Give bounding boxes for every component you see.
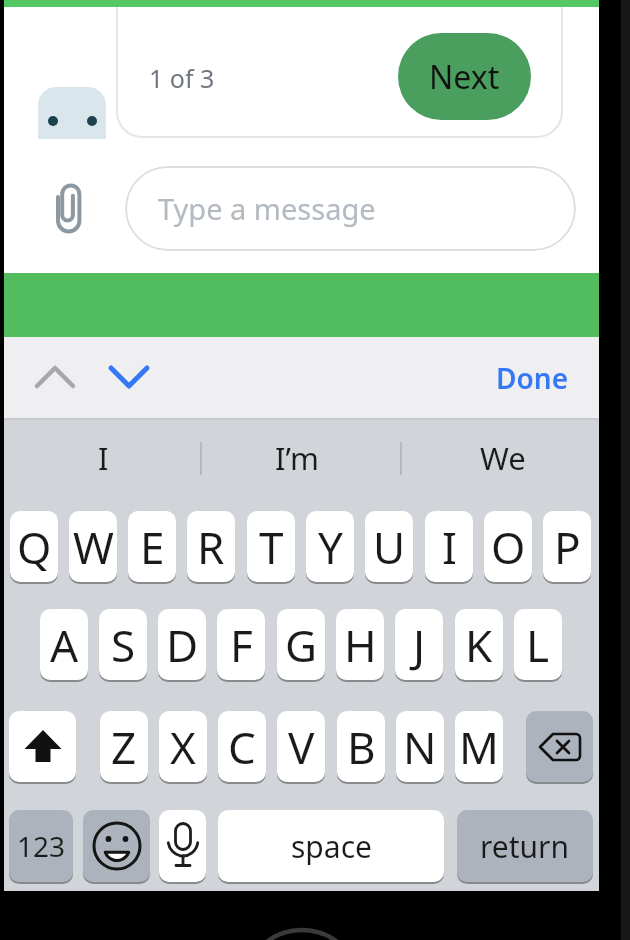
staticText: D <box>166 615 199 675</box>
staticText: M <box>459 717 499 777</box>
button[interactable]: O <box>484 511 532 582</box>
button[interactable]: W <box>69 511 117 582</box>
staticText: L <box>526 615 550 675</box>
button[interactable] <box>159 810 206 882</box>
staticText: K <box>465 615 493 675</box>
staticText: J <box>413 615 426 675</box>
button[interactable] <box>83 810 150 882</box>
button[interactable]: R <box>187 511 235 582</box>
staticText: A <box>50 615 79 675</box>
button[interactable]: K <box>455 609 503 680</box>
button[interactable]: return <box>457 810 593 882</box>
staticText: Z <box>111 717 137 777</box>
button[interactable]: M <box>455 711 503 782</box>
staticText: B <box>347 717 376 777</box>
button[interactable] <box>107 358 151 398</box>
staticText: W <box>73 517 114 577</box>
staticText: I <box>442 517 457 577</box>
button[interactable]: B <box>337 711 385 782</box>
staticText: S <box>111 615 136 675</box>
staticText: Type a message <box>158 189 376 228</box>
staticText: V <box>288 717 315 777</box>
staticText: 1 of 3 <box>149 61 215 95</box>
button[interactable]: N <box>396 711 444 782</box>
staticText: F <box>230 615 253 675</box>
button[interactable] <box>9 711 76 782</box>
button[interactable] <box>526 711 593 782</box>
staticText: H <box>344 615 377 675</box>
staticText: U <box>373 517 406 577</box>
button[interactable]: Z <box>100 711 148 782</box>
button[interactable]: Type a message <box>125 166 576 251</box>
button[interactable]: I <box>40 428 166 488</box>
staticText: G <box>285 615 318 675</box>
button[interactable]: I’m <box>234 428 360 488</box>
button[interactable]: D <box>158 609 206 680</box>
button[interactable]: I <box>425 511 473 582</box>
staticText: Q <box>17 517 52 577</box>
button[interactable]: V <box>277 711 325 782</box>
staticText: I <box>98 437 109 479</box>
staticText: R <box>197 517 225 577</box>
staticText: return <box>480 826 570 867</box>
button[interactable]: C <box>218 711 266 782</box>
button[interactable]: U <box>365 511 413 582</box>
button[interactable]: T <box>247 511 295 582</box>
button[interactable]: S <box>99 609 147 680</box>
staticText: 123 <box>17 827 66 865</box>
button[interactable]: space <box>218 810 444 882</box>
staticText: Y <box>318 517 343 577</box>
button[interactable]: X <box>159 711 207 782</box>
button[interactable]: Q <box>10 511 58 582</box>
staticText: N <box>403 717 437 777</box>
button[interactable]: A <box>40 609 88 680</box>
button[interactable]: Y <box>306 511 354 582</box>
button[interactable]: 123 <box>9 810 73 882</box>
staticText: T <box>259 517 284 577</box>
staticText: Done <box>496 359 569 397</box>
button[interactable]: Done <box>486 356 578 400</box>
button[interactable]: P <box>543 511 591 582</box>
button[interactable]: E <box>128 511 176 582</box>
staticText: Next <box>429 55 500 99</box>
staticText: E <box>140 517 165 577</box>
button[interactable]: J <box>395 609 443 680</box>
staticText: C <box>228 717 256 777</box>
staticText: P <box>554 517 581 577</box>
button[interactable]: Next <box>398 33 531 120</box>
staticText: X <box>170 717 196 777</box>
staticText: O <box>491 517 526 577</box>
button[interactable] <box>33 358 77 398</box>
button[interactable]: F <box>217 609 265 680</box>
button[interactable]: We <box>440 428 566 488</box>
button[interactable]: H <box>336 609 384 680</box>
button[interactable]: G <box>277 609 325 680</box>
staticText: We <box>480 437 526 479</box>
button[interactable]: L <box>514 609 562 680</box>
staticText: space <box>291 826 372 867</box>
staticText: I’m <box>275 437 319 479</box>
